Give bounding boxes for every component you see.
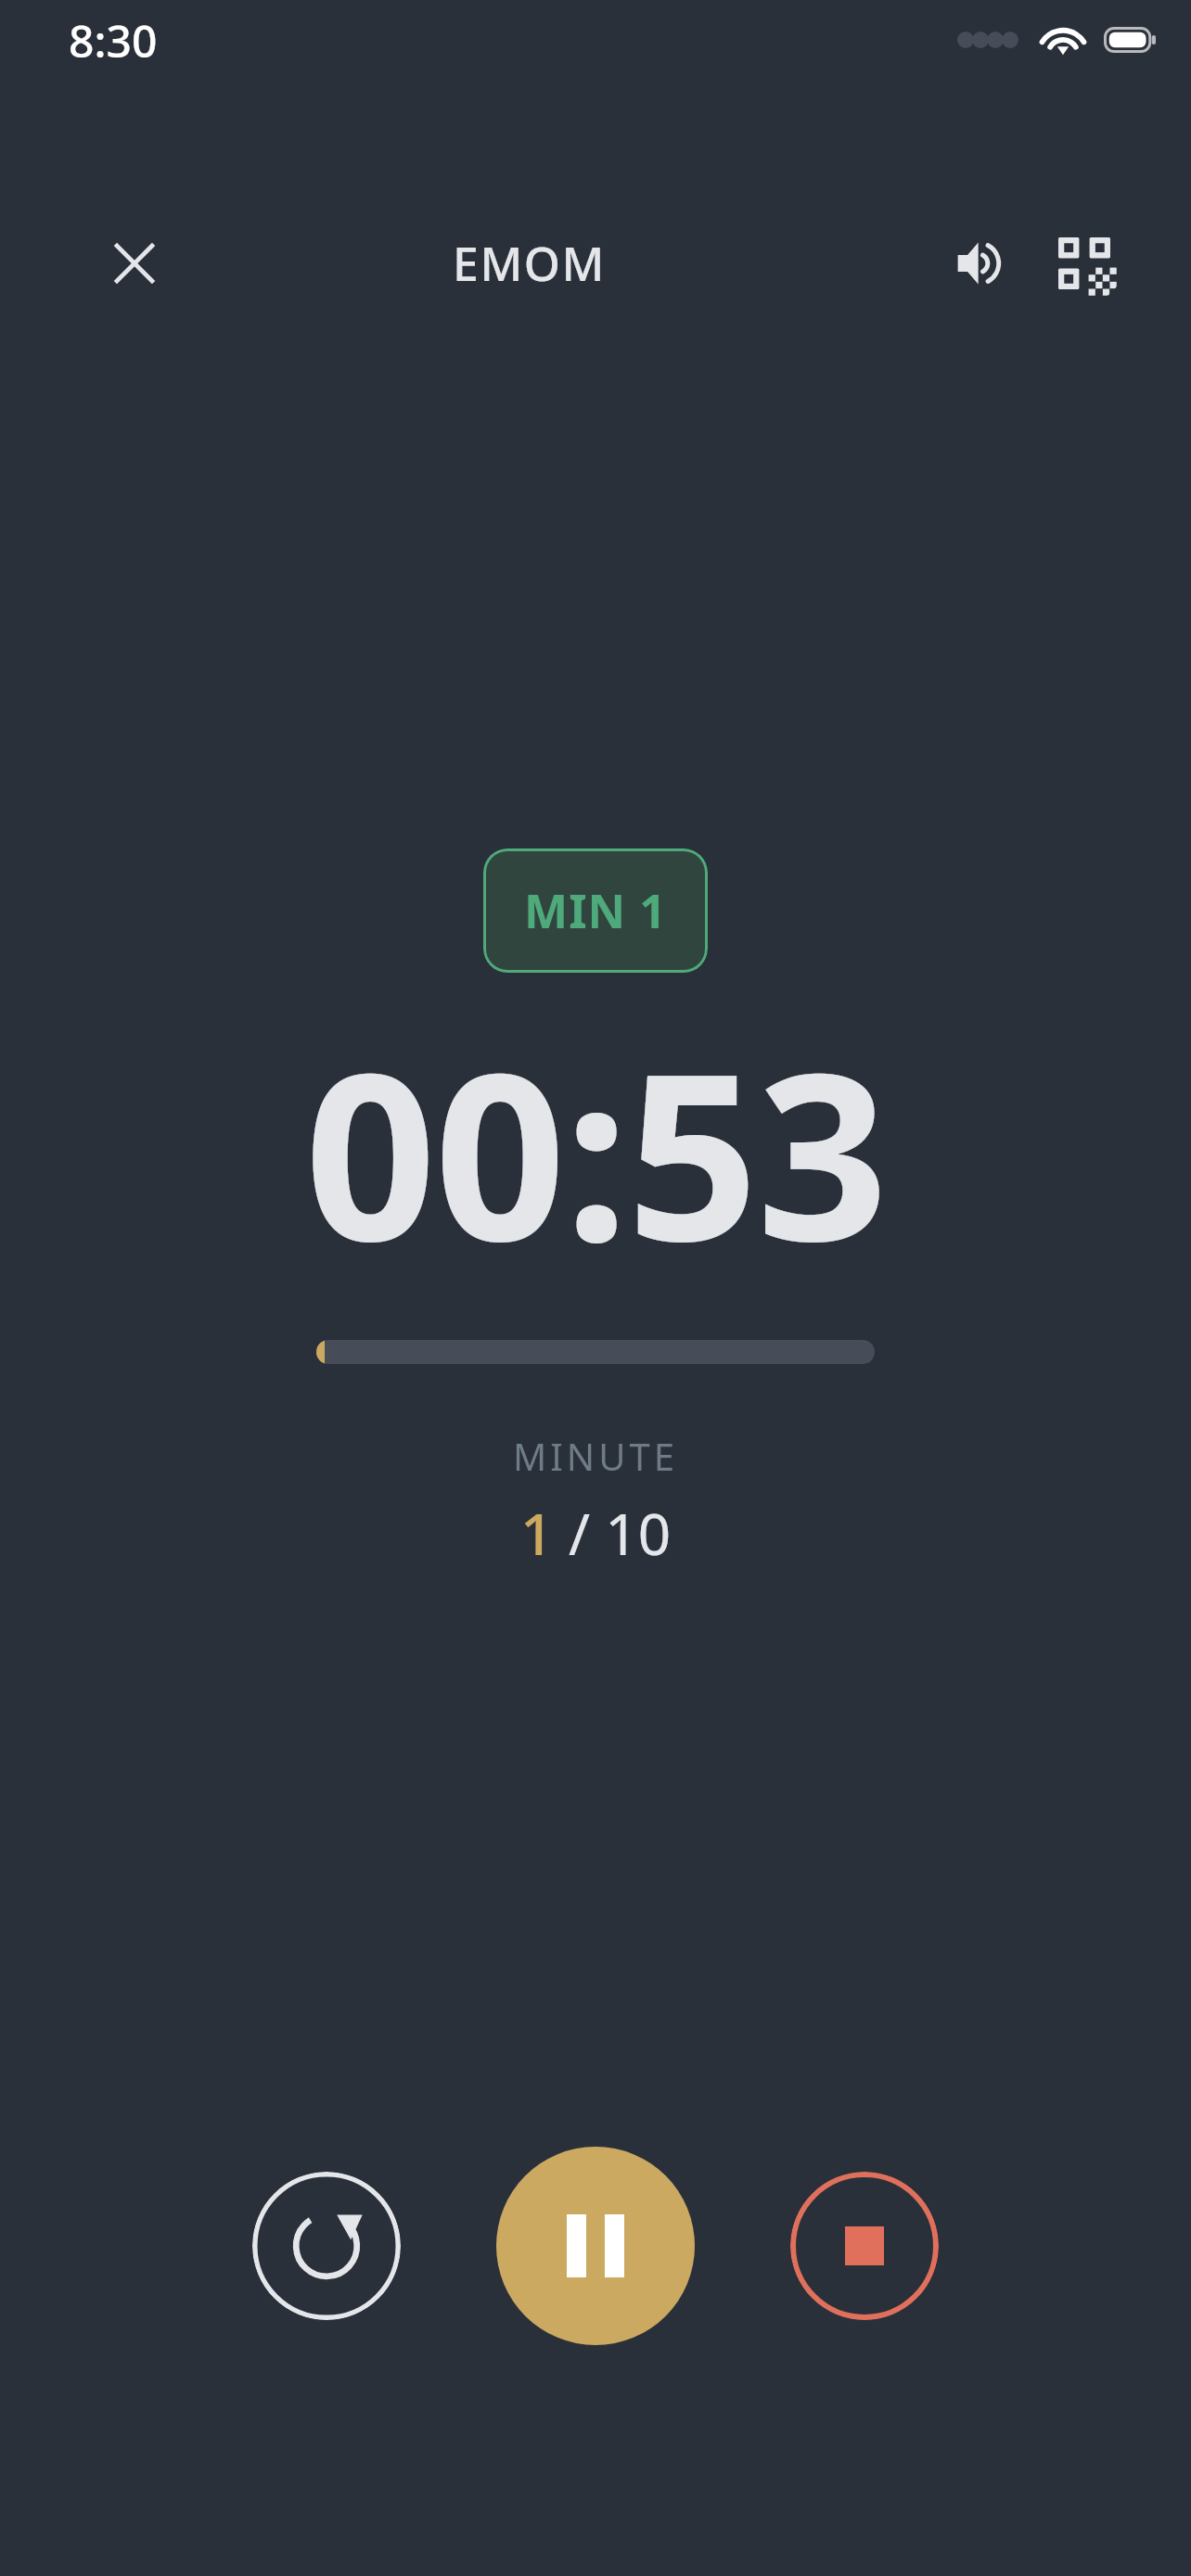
staticText: 1 [520,1494,554,1572]
staticText: MINUTE [513,1431,678,1481]
staticText: 00:53 [304,995,887,1308]
button[interactable]: QR code [1044,223,1124,303]
button[interactable]: Stop [790,2172,939,2320]
staticText: EMOM [453,232,606,295]
staticText: / 10 [554,1494,672,1572]
staticText: 8:30 [69,10,158,70]
staticText: MIN 1 [524,879,667,942]
button[interactable]: Close [97,226,172,300]
button[interactable]: Pause [496,2147,695,2345]
button[interactable]: Restart [252,2172,401,2320]
button[interactable]: MIN 1 [483,848,708,973]
button[interactable]: Sound [941,223,1020,303]
